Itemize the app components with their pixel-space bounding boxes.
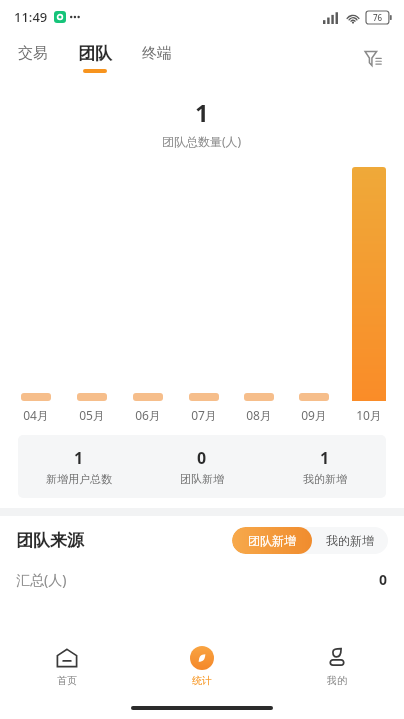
button[interactable]: 首页 [0, 635, 134, 697]
staticText: 汇总(人) [16, 570, 67, 589]
staticText: 1 [320, 447, 330, 469]
staticText: 新增用户总数 [46, 472, 112, 486]
staticText: 0 [197, 447, 207, 469]
staticText: 10月 [356, 407, 382, 423]
button[interactable]: 交易 [14, 42, 52, 74]
staticText: 终端 [142, 44, 172, 63]
button[interactable]: 1 [18, 447, 140, 486]
button[interactable]: 统计 [134, 635, 269, 697]
staticText: 统计 [192, 674, 212, 687]
staticText: 我的新增 [303, 472, 347, 486]
staticText: 团队来源 [16, 530, 84, 551]
button[interactable]: Filter [356, 41, 390, 75]
button[interactable]: 1 [263, 447, 386, 486]
staticText: 团队新增 [180, 472, 224, 486]
staticText: 团队总数量(人) [162, 133, 242, 149]
staticText: 团队新增 [248, 533, 296, 548]
staticText: 0 [379, 570, 388, 589]
staticText: 04月 [23, 407, 49, 423]
staticText: 我的 [327, 674, 347, 687]
staticText: 团队 [78, 43, 112, 64]
staticText: 1 [74, 447, 84, 469]
button[interactable]: 我的 [269, 635, 404, 697]
staticText: 08月 [246, 407, 272, 423]
other: 统计 [190, 646, 214, 670]
staticText: 07月 [191, 407, 217, 423]
button[interactable]: 团队 [74, 41, 116, 75]
staticText: 1 [195, 96, 209, 129]
button[interactable]: 终端 [138, 42, 176, 74]
staticText: 11:49 [14, 8, 48, 26]
staticText: 首页 [57, 674, 77, 687]
button[interactable]: 团队新增 [232, 527, 312, 554]
staticText: 09月 [301, 407, 327, 423]
button[interactable]: 我的新增 [312, 527, 388, 554]
staticText: 05月 [79, 407, 105, 423]
staticText: 06月 [135, 407, 161, 423]
staticText: 我的新增 [326, 533, 374, 548]
staticText: 交易 [18, 44, 48, 63]
staticText: 76 [373, 12, 383, 23]
button[interactable]: 0 [140, 447, 263, 486]
